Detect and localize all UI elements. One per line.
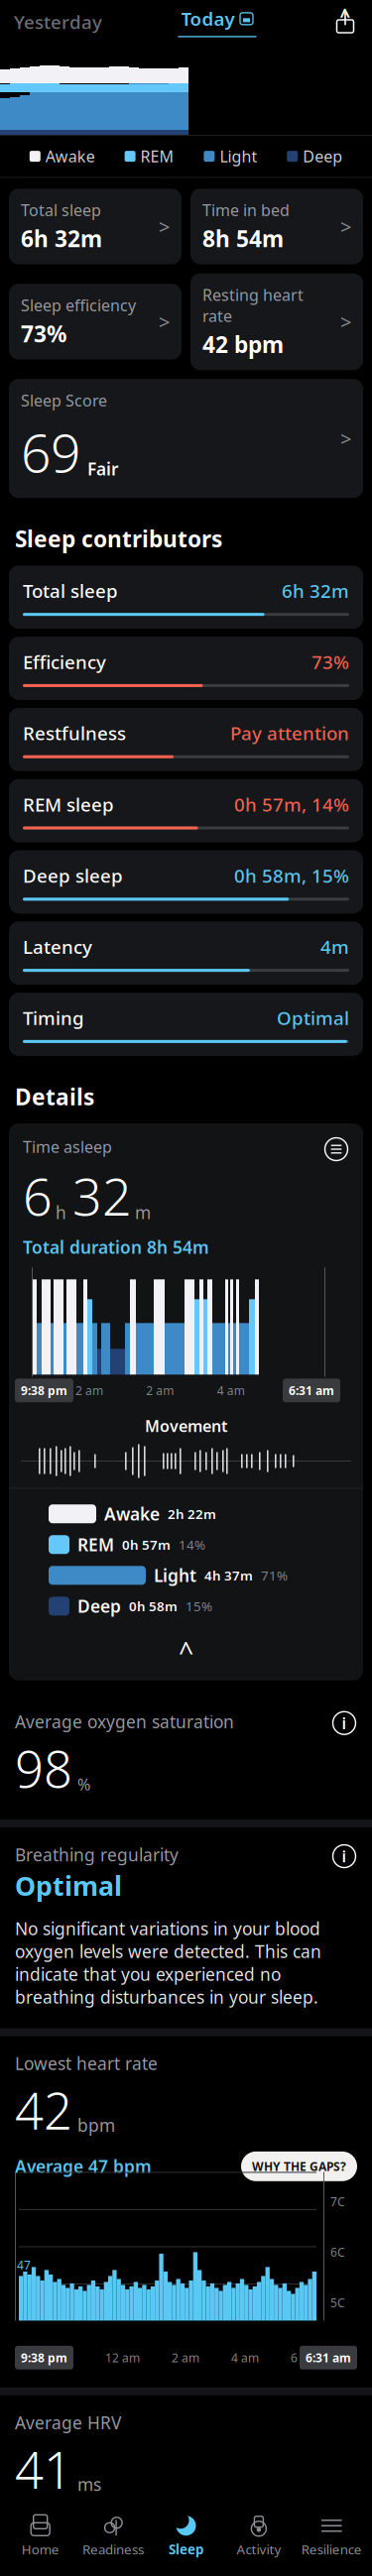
staticText: Awake (104, 1502, 160, 1525)
staticText: 6C (330, 2244, 345, 2260)
button[interactable]: Sleep (150, 2511, 222, 2562)
button[interactable]: Readiness (77, 2511, 150, 2562)
staticText: Today (181, 6, 235, 31)
staticText: 6 (291, 2350, 298, 2365)
button[interactable]: Total sleep (9, 566, 363, 629)
staticText: Awake (45, 146, 95, 167)
staticText: > (159, 213, 170, 240)
staticText: Time in bed (202, 199, 290, 221)
staticText: Average HRV (15, 2411, 121, 2434)
staticText: Deep (303, 146, 342, 167)
staticText: 7C (330, 2194, 345, 2209)
staticText: 0h 57m, 14% (234, 792, 349, 817)
staticText: 9:38 pm (21, 2350, 67, 2365)
staticText: 4 am (217, 1383, 245, 1398)
button[interactable]: Efficiency (9, 637, 363, 700)
button[interactable]: Latency (9, 921, 363, 985)
staticText: 69 (21, 417, 80, 487)
staticText: Max 71 ms (15, 2514, 106, 2537)
button[interactable]: Sleep efficiency (9, 284, 182, 359)
staticText: 4C (330, 2345, 345, 2361)
button[interactable]: Deep sleep (9, 850, 363, 913)
staticText: Average oxygen saturation (15, 1710, 234, 1733)
staticText: WHY THE GAPS? (252, 2158, 346, 2174)
staticText: 4 am (231, 2350, 259, 2365)
staticText: > (340, 213, 351, 240)
staticText: REM sleep (23, 792, 114, 817)
button[interactable]: Restfulness (9, 708, 363, 771)
staticText: 6 (23, 1161, 53, 1230)
staticText: REM (140, 146, 174, 167)
staticText: bpm (77, 2114, 115, 2137)
staticText: Breathing regularity (15, 1843, 179, 1866)
button[interactable]: More information (331, 1710, 357, 1736)
staticText: 6 (288, 1383, 295, 1398)
staticText: 6h 32m (21, 224, 102, 253)
staticText: ^ (179, 1633, 193, 1668)
staticText: 5C (330, 2295, 345, 2310)
staticText: 9:38 pm (21, 1383, 67, 1398)
button[interactable]: Collapse details (9, 1621, 363, 1680)
staticText: i (342, 1846, 347, 1867)
staticText: 6h 32m (282, 578, 349, 603)
staticText: Details (15, 1082, 94, 1112)
staticText: 42 bpm (202, 329, 284, 359)
staticText: i (342, 1712, 347, 1733)
staticText: 42 (15, 2077, 72, 2144)
staticText: 0h 58m (129, 1597, 178, 1615)
button[interactable]: Resilience (295, 2511, 368, 2562)
staticText: WHY THE GAPS? (252, 2517, 346, 2533)
staticText: 73% (21, 319, 66, 349)
staticText: 12 am (105, 2350, 140, 2365)
staticText: Pay attention (230, 721, 349, 745)
button[interactable]: Home (4, 2511, 77, 2562)
staticText: ms (77, 2473, 101, 2496)
staticText: 0h 58m, 15% (234, 863, 349, 888)
staticText: Average 47 bpm (15, 2155, 152, 2178)
button[interactable]: Activity (222, 2511, 295, 2562)
staticText: 4h 37m (204, 1567, 253, 1584)
staticText: Total duration 8h 54m (23, 1236, 209, 1259)
staticText: Light (220, 146, 257, 167)
button[interactable]: REM sleep (9, 779, 363, 842)
staticText: Movement (145, 1415, 227, 1436)
button[interactable]: Total sleep (9, 189, 182, 264)
button[interactable]: Time in bed (190, 189, 363, 264)
staticText: Activity (236, 2541, 281, 2558)
button[interactable]: Yesterday (0, 10, 102, 34)
staticText: > (159, 308, 170, 335)
button[interactable]: Chart options (323, 1136, 349, 1162)
staticText: Total sleep (21, 199, 101, 221)
staticText: Resilience (301, 2541, 362, 2558)
staticText: h (56, 1201, 66, 1224)
staticText: 0h 57m (122, 1536, 171, 1553)
button[interactable]: Sleep Score (9, 379, 363, 498)
staticText: Latency (23, 934, 92, 959)
staticText: Home (22, 2541, 59, 2558)
staticText: Optimal (277, 1006, 349, 1030)
staticText: 15% (186, 1597, 212, 1615)
staticText: Lowest heart rate (15, 2052, 158, 2075)
button[interactable]: WHY THE GAPS? (241, 2152, 357, 2181)
staticText: 2 am (172, 2350, 199, 2365)
button[interactable]: Today (178, 6, 256, 37)
button[interactable]: WHY THE GAPS? (241, 2511, 357, 2540)
staticText: Sleep (169, 2541, 203, 2558)
staticText: Sleep contributors (15, 524, 222, 554)
staticText: Light (154, 1564, 196, 1587)
staticText: Resting heart rate (202, 284, 304, 326)
staticText: Restfulness (23, 721, 126, 745)
staticText: 2h 22m (168, 1505, 216, 1523)
staticText: 47 (17, 2257, 31, 2273)
staticText: Deep sleep (23, 863, 123, 888)
staticText: Sleep efficiency (21, 295, 136, 316)
staticText: No significant variations in your blood … (15, 1917, 321, 2008)
staticText: Efficiency (23, 650, 106, 674)
button[interactable]: Timing (9, 993, 363, 1056)
staticText: 73% (311, 650, 349, 674)
button[interactable]: More information (331, 1843, 357, 1869)
staticText: 41 (15, 2436, 72, 2503)
button[interactable]: Resting heart rate (190, 273, 363, 370)
staticText: % (77, 1774, 90, 1795)
button[interactable]: Share (332, 9, 372, 35)
